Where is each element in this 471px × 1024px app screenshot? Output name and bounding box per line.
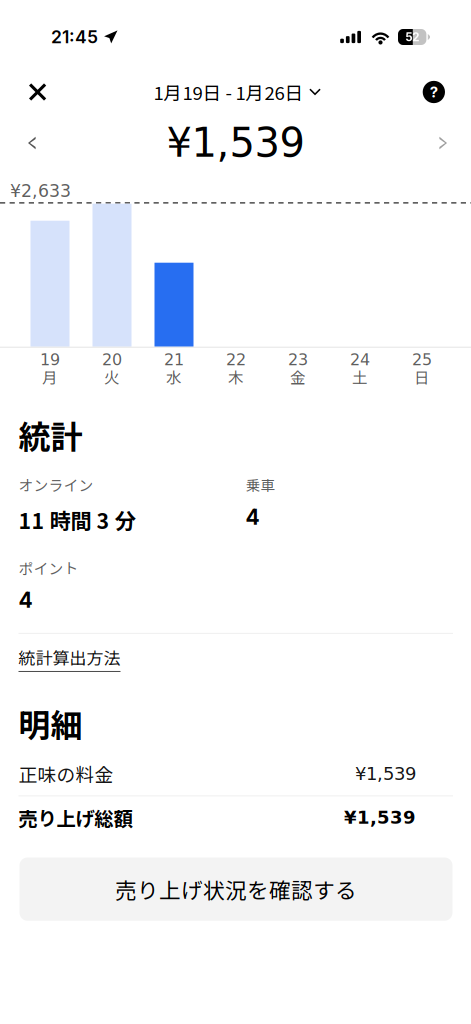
- button[interactable]: 売り上げ状況を確認する: [19, 857, 452, 921]
- staticText: 4: [18, 587, 32, 613]
- staticText: 売り上げ状況を確認する: [115, 873, 357, 905]
- staticText: 21: [164, 350, 184, 369]
- staticText: ¥1,539: [355, 763, 416, 784]
- staticText: 土: [352, 365, 368, 388]
- staticText: 統計: [18, 412, 82, 458]
- staticText: 1月19日 - 1月26日: [153, 78, 303, 105]
- button[interactable]: 1月19日 - 1月26日: [153, 75, 321, 109]
- staticText: 23: [288, 350, 308, 369]
- button[interactable]: 統計算出方法: [0, 634, 471, 672]
- staticText: 金: [290, 365, 306, 388]
- staticText: ¥1,539: [344, 807, 416, 828]
- staticText: 売り上げ総額: [18, 803, 132, 831]
- staticText: 19: [40, 350, 60, 369]
- staticText: ?: [430, 83, 438, 101]
- staticText: 4: [245, 504, 259, 530]
- staticText: 20: [102, 350, 122, 369]
- staticText: 水: [166, 365, 182, 388]
- staticText: 52: [405, 30, 419, 44]
- staticText: 11 時間 3 分: [18, 504, 135, 535]
- staticText: 火: [104, 365, 120, 388]
- button[interactable]: Help: [399, 75, 445, 109]
- staticText: 乗車: [245, 474, 275, 495]
- staticText: ¥2,633: [10, 181, 71, 201]
- staticText: ポイント: [18, 557, 78, 578]
- staticText: 木: [228, 365, 244, 388]
- button[interactable]: Close: [29, 75, 75, 109]
- staticText: 21:45: [51, 26, 98, 48]
- staticText: 24: [350, 350, 370, 369]
- button[interactable]: Next week: [407, 123, 447, 163]
- staticText: 正味の料金: [18, 760, 113, 787]
- staticText: 22: [226, 350, 246, 369]
- staticText: 25: [412, 350, 432, 369]
- staticText: 月: [42, 365, 58, 388]
- staticText: 明細: [18, 700, 82, 746]
- button[interactable]: Previous week: [28, 123, 68, 163]
- staticText: ¥1,539: [166, 120, 304, 166]
- staticText: 統計算出方法: [18, 645, 120, 669]
- staticText: オンライン: [18, 474, 93, 495]
- staticText: 日: [414, 365, 430, 388]
